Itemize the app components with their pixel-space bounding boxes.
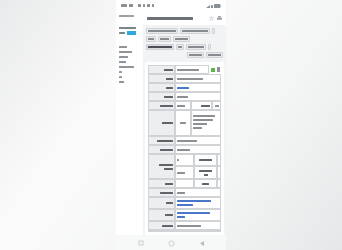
button[interactable]: Recents [135, 237, 147, 249]
button[interactable] [212, 28, 215, 34]
button[interactable] [175, 83, 221, 92]
button[interactable] [119, 76, 122, 78]
button[interactable] [186, 44, 206, 50]
button[interactable]: Print [217, 16, 222, 21]
button[interactable]: Home [165, 237, 177, 249]
button[interactable] [119, 27, 136, 29]
button[interactable] [208, 44, 211, 50]
button[interactable]: Menu header [119, 15, 134, 17]
button[interactable] [119, 61, 126, 63]
button[interactable] [146, 36, 156, 42]
button[interactable] [119, 56, 128, 58]
button[interactable] [175, 209, 221, 221]
button[interactable] [119, 66, 134, 68]
button[interactable] [146, 28, 178, 34]
button[interactable] [119, 71, 122, 73]
button[interactable] [173, 36, 190, 42]
button[interactable] [187, 52, 204, 58]
button[interactable] [158, 36, 171, 42]
button[interactable] [146, 44, 174, 50]
button[interactable]: Favourite [209, 16, 214, 21]
button[interactable] [119, 81, 124, 83]
button[interactable] [206, 52, 223, 58]
button[interactable] [119, 46, 127, 48]
button[interactable] [180, 28, 210, 34]
button[interactable] [119, 31, 136, 35]
button[interactable] [176, 44, 184, 50]
button[interactable] [119, 51, 132, 53]
button[interactable]: Back [196, 237, 208, 249]
button[interactable] [175, 197, 221, 209]
